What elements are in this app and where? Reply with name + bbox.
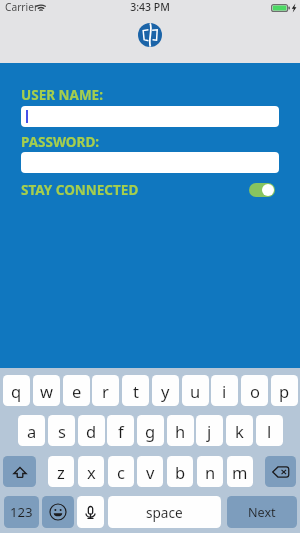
button[interactable]: Shift: [3, 456, 36, 487]
staticText: y: [161, 380, 170, 402]
staticText: v: [146, 461, 155, 483]
button[interactable]: Backspace: [265, 456, 296, 487]
button[interactable]: n: [197, 456, 223, 487]
staticText: h: [175, 420, 186, 442]
staticText: r: [102, 380, 109, 402]
button[interactable]: Stay connected toggle: [249, 183, 275, 197]
button[interactable]: o: [241, 375, 268, 406]
staticText: space: [146, 503, 183, 522]
button[interactable]: l: [256, 415, 283, 446]
staticText: d: [86, 420, 97, 442]
button[interactable]: e: [63, 375, 90, 406]
staticText: u: [190, 380, 201, 402]
staticText: t: [133, 380, 139, 402]
staticText: a: [27, 420, 37, 442]
button[interactable]: p: [271, 375, 298, 406]
button[interactable]: Dictation: [77, 496, 104, 528]
button[interactable]: v: [137, 456, 163, 487]
button[interactable]: z: [48, 456, 74, 487]
staticText: 3:43 PM: [0, 0, 300, 14]
button[interactable]: d: [78, 415, 105, 446]
button[interactable]: g: [137, 415, 164, 446]
button[interactable]: m: [227, 456, 253, 487]
staticText: j: [207, 420, 212, 442]
button[interactable]: h: [167, 415, 194, 446]
staticText: f: [118, 420, 124, 442]
button[interactable]: a: [18, 415, 45, 446]
button[interactable]: [21, 106, 279, 127]
button[interactable]: i: [211, 375, 238, 406]
button[interactable]: t: [122, 375, 149, 406]
staticText: PASSWORD:: [21, 133, 100, 151]
staticText: Next: [248, 504, 276, 521]
button[interactable]: f: [107, 415, 134, 446]
staticText: s: [58, 420, 66, 442]
staticText: c: [117, 461, 125, 483]
staticText: n: [205, 461, 216, 483]
staticText: m: [232, 461, 248, 483]
button[interactable]: r: [92, 375, 119, 406]
button[interactable]: [21, 152, 279, 173]
button[interactable]: b: [167, 456, 193, 487]
staticText: g: [145, 420, 156, 442]
button[interactable]: k: [226, 415, 253, 446]
button[interactable]: space: [108, 496, 221, 528]
staticText: i: [222, 380, 227, 402]
staticText: o: [250, 380, 260, 402]
staticText: Carrier: [5, 0, 39, 14]
button[interactable]: u: [182, 375, 209, 406]
staticText: b: [175, 461, 186, 483]
staticText: l: [267, 420, 272, 442]
staticText: 123: [10, 503, 33, 521]
staticText: p: [279, 380, 290, 402]
button[interactable]: w: [33, 375, 60, 406]
staticText: x: [87, 461, 96, 483]
staticText: q: [11, 380, 22, 402]
staticText: USER NAME:: [21, 86, 103, 104]
button[interactable]: Emoji: [42, 496, 74, 528]
button[interactable]: q: [3, 375, 30, 406]
button[interactable]: Next: [227, 496, 297, 528]
button[interactable]: x: [78, 456, 104, 487]
button[interactable]: 123: [4, 496, 39, 528]
staticText: z: [57, 461, 65, 483]
button[interactable]: c: [108, 456, 134, 487]
button[interactable]: s: [48, 415, 75, 446]
button[interactable]: j: [196, 415, 223, 446]
staticText: e: [72, 380, 82, 402]
staticText: w: [40, 380, 53, 402]
button[interactable]: y: [152, 375, 179, 406]
staticText: STAY CONNECTED: [21, 181, 139, 199]
staticText: k: [235, 420, 244, 442]
